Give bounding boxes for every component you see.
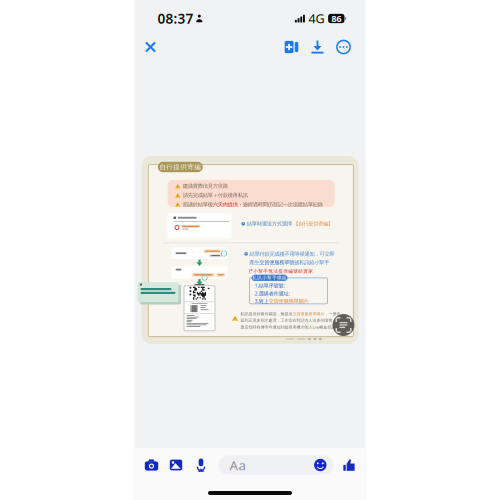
staticText: ・逾經過時間仍登記一次追蹤結單紀錄 [238,201,323,208]
button[interactable]: Camera [139,450,163,480]
staticText: 交貨便服務單圖片 [292,311,324,316]
staticText: 請先完成結單＋付款後再私訊 [183,192,248,199]
staticText: 結單時運送方式選擇 [247,220,292,227]
button[interactable]: Emoji [314,459,326,471]
staticText: ，一律依 [324,311,340,316]
staticText: 【自行提供寄編】 [293,220,333,227]
staticText: 1.結單序號號: [254,282,284,289]
staticText: Aa [229,456,245,474]
staticText: 後私訊給小幫手 [294,259,329,266]
staticText: (*小幫手無法提供編號給賣家 [249,268,313,274]
staticText: 結單付款完成後不用等候通知，可立即 [249,250,334,257]
staticText: 六天內提供 [213,201,238,208]
staticText: 交貨便服務單圖片 [268,298,308,305]
staticText: 重店找時程傳寄件通知到超商里機才能入Line帳如登記 [240,324,335,330]
staticText: 建議實際信見方良路 [183,183,228,189]
button[interactable]: Close [136,33,164,61]
staticText: 08:37 [157,9,193,28]
staticText: 延到正現多則才處理，工作室在對話內人洽多的階查，請見諒 [240,318,348,323]
staticText: 面議於結單後 [183,201,213,208]
staticText: 自行提供寄編 [159,163,201,171]
staticText: 私訊小幫手模組 [252,275,287,281]
staticText: 2.選購者件通址: [254,290,289,297]
button[interactable]: Send thumbs up [338,450,359,480]
staticText: 3.附上 [254,298,268,305]
button[interactable]: Live Text [331,313,355,337]
button[interactable]: Save to Keep [278,33,304,61]
button[interactable]: Voice message [188,450,213,480]
staticText: 私訊提供件條件確認，無提供 [240,311,292,316]
button[interactable]: Download [304,33,330,61]
staticText: 4G [308,10,324,27]
staticText: 產生 [249,259,259,266]
staticText: 86 [331,12,341,25]
staticText: 交貨便服務單號 [259,259,294,266]
button[interactable]: More options [330,33,356,61]
button[interactable]: Photos [163,450,188,480]
